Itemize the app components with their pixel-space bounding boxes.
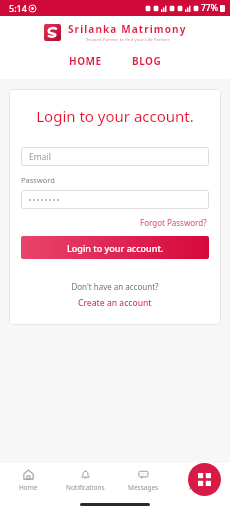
button[interactable]: HOME: [61, 51, 110, 71]
button[interactable]: Messages: [114, 463, 172, 497]
staticText: Srilanka Matrimony: [68, 22, 187, 36]
button[interactable]: Account menu: [188, 463, 221, 496]
staticText: Messages: [128, 483, 159, 492]
button[interactable]: [21, 190, 209, 209]
button[interactable]: Email: [21, 147, 209, 166]
staticText: Account: [189, 483, 214, 492]
button[interactable]: Account: [172, 463, 230, 497]
staticText: Notifications: [66, 483, 105, 492]
button[interactable]: Login to your account.: [21, 236, 209, 259]
staticText: Create an account: [78, 297, 152, 309]
staticText: HOME: [69, 54, 102, 68]
staticText: Trusted Partner to find your Life Partne…: [86, 37, 170, 42]
staticText: Email: [29, 151, 51, 163]
button[interactable]: Create an account: [76, 295, 154, 311]
staticText: 5:14: [9, 2, 27, 14]
staticText: Forgot Password?: [140, 217, 207, 228]
button[interactable]: Forgot Password?: [138, 215, 209, 230]
staticText: Login to your account.: [21, 106, 209, 126]
staticText: Login to your account.: [67, 242, 164, 254]
staticText: BLOG: [132, 54, 162, 68]
staticText: Password: [21, 175, 55, 185]
button[interactable]: BLOG: [124, 51, 170, 71]
staticText: Don't have an account?: [21, 281, 209, 292]
staticText: Home: [19, 483, 38, 492]
button[interactable]: Notifications: [57, 463, 114, 497]
button[interactable]: Home: [0, 463, 57, 497]
staticText: 77%: [201, 2, 218, 14]
